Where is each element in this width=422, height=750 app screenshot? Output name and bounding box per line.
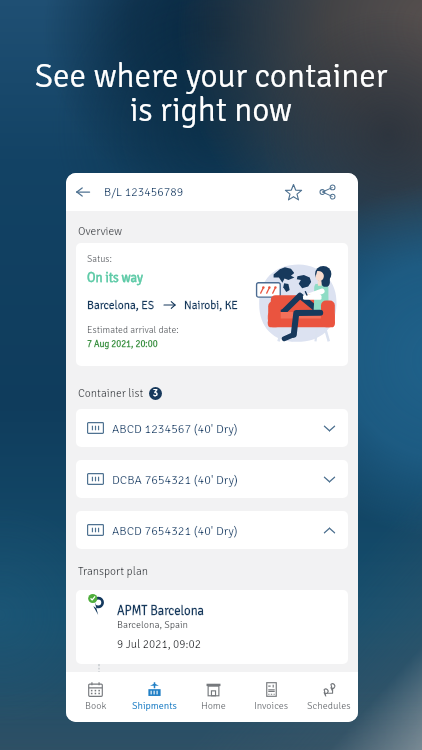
staticText: Barcelona, ES [87, 298, 155, 312]
staticText: Transport plan [78, 564, 148, 578]
staticText: Schedules [307, 700, 351, 712]
staticText: B/L 123456789 [104, 185, 184, 200]
button[interactable]: APMT Barcelona [76, 590, 348, 664]
button[interactable]: Satus: [76, 243, 348, 366]
staticText: ABCD 7654321 (40' Dry) [112, 523, 238, 538]
staticText: Container list [78, 386, 144, 400]
button[interactable]: Schedules [300, 671, 358, 721]
button[interactable]: Book [66, 671, 125, 721]
staticText: Nairobi, KE [184, 298, 238, 312]
staticText: See where your container is right now [0, 56, 422, 131]
button[interactable]: DCBA 7654321 (40' Dry) [76, 460, 348, 498]
button[interactable]: Shipments [125, 671, 184, 721]
staticText: Shipments [132, 700, 177, 712]
staticText: 7 Aug 2021, 20:00 [87, 338, 158, 349]
button[interactable]: ABCD 7654321 (40' Dry) [76, 511, 348, 549]
staticText: Satus: [87, 253, 112, 265]
staticText: ABCD 1234567 (40' Dry) [112, 421, 238, 436]
staticText: Invoices [254, 700, 289, 712]
button[interactable]: Invoices [242, 671, 300, 721]
staticText: APMT Barcelona [117, 603, 204, 619]
staticText: Book [85, 700, 107, 712]
button[interactable]: Home [184, 671, 242, 721]
staticText: Barcelona, Spain [117, 619, 189, 631]
button[interactable]: Share [311, 176, 343, 208]
staticText: Home [201, 700, 226, 712]
staticText: Estimated arrival date: [87, 324, 179, 336]
staticText: 9 Jul 2021, 09:02 [117, 637, 201, 651]
button[interactable]: ABCD 1234567 (40' Dry) [76, 409, 348, 447]
staticText: On its way [87, 270, 143, 286]
staticText: DCBA 7654321 (40' Dry) [112, 472, 238, 487]
staticText: Overview [78, 224, 123, 238]
button[interactable]: Favorite [277, 176, 309, 208]
button[interactable]: Back [67, 176, 99, 208]
staticText: 3 [153, 388, 158, 399]
